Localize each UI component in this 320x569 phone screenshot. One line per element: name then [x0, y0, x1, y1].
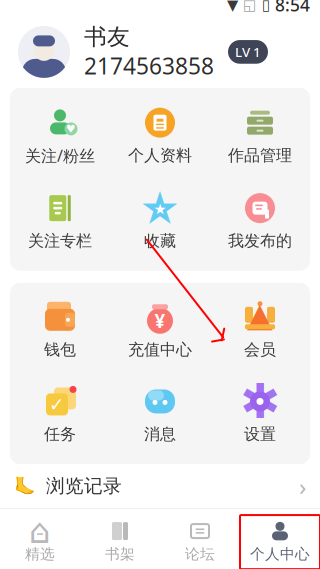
staticText: ◱ — [243, 0, 257, 13]
staticText: ★ — [139, 182, 180, 234]
button[interactable]: 我发布的 — [210, 188, 310, 255]
button[interactable]: ✓ — [10, 381, 110, 448]
staticText: 我发布的 — [228, 231, 292, 251]
button[interactable]: ⌂ — [0, 515, 80, 569]
button[interactable]: 关注专栏 — [10, 188, 110, 255]
staticText: 关注专栏 — [28, 231, 92, 251]
staticText: 作品管理 — [228, 146, 292, 165]
staticText: 浏览记录 — [46, 475, 122, 497]
staticText: 设置 — [244, 424, 276, 444]
staticText: 钱包 — [44, 340, 76, 359]
button[interactable]: 作品管理 — [210, 103, 310, 169]
staticText: 书架 — [105, 545, 135, 563]
staticText: LV 1 — [235, 43, 261, 61]
staticText: 书友2174563858 — [84, 23, 214, 81]
button[interactable]: 书架 — [80, 515, 160, 569]
staticText: 充值中心 — [128, 340, 192, 359]
button[interactable]: 书友2174563858 — [0, 16, 320, 88]
button[interactable]: 个人资料 — [110, 103, 210, 169]
staticText: 消息 — [144, 424, 176, 444]
staticText: ▯ — [262, 0, 270, 13]
button[interactable]: 消息 — [110, 381, 210, 448]
staticText: 精选 — [25, 545, 55, 563]
button[interactable]: 论坛 — [160, 515, 240, 569]
staticText: 个人资料 — [128, 146, 192, 165]
staticText: 关注/粉丝 — [25, 145, 95, 166]
staticText: ▲ — [247, 296, 273, 334]
button[interactable]: 个人中心 — [240, 515, 320, 569]
staticText: 8:54 — [275, 0, 310, 16]
staticText: ¥ — [154, 308, 165, 333]
button[interactable]: ♥ — [10, 102, 110, 170]
staticText: 会员 — [244, 340, 276, 359]
staticText: ♥ — [66, 123, 76, 135]
staticText: ✱ — [240, 374, 280, 429]
staticText: ✓ — [49, 394, 65, 415]
button[interactable]: ★ — [110, 188, 210, 255]
button[interactable]: ¥ — [110, 297, 210, 363]
button[interactable]: ▲ — [210, 297, 310, 363]
staticText: 任务 — [44, 424, 76, 444]
button[interactable]: 钱包 — [10, 297, 110, 363]
button[interactable]: 🦶 — [0, 464, 320, 508]
staticText: ▼ — [227, 0, 238, 13]
staticText: 🦶 — [14, 476, 36, 496]
button[interactable]: ✱ — [210, 381, 310, 448]
staticText: ★ — [153, 201, 166, 217]
staticText: 论坛 — [185, 545, 215, 563]
staticText: 个人中心 — [250, 545, 310, 563]
staticText: › — [299, 470, 306, 502]
staticText: 收藏 — [144, 231, 176, 251]
staticText: ⌂ — [29, 511, 51, 551]
